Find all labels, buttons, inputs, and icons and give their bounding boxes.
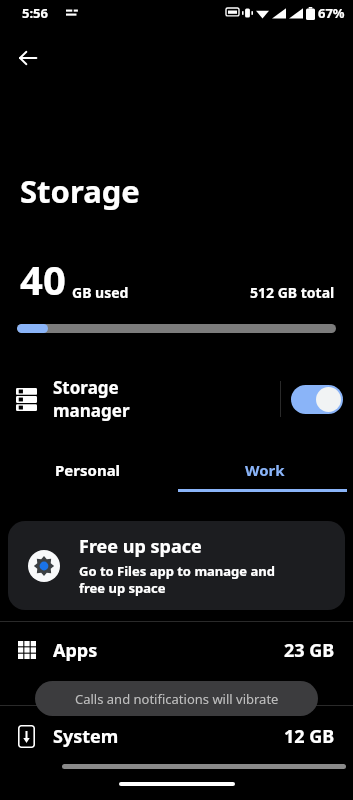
staticText: 12 GB [284, 724, 335, 749]
staticText: Go to Files app to manage and free up sp… [79, 562, 275, 597]
button[interactable]: Back [6, 36, 50, 80]
staticText: 5:56 [22, 4, 48, 22]
staticText: Apps [53, 638, 284, 663]
button[interactable]: Storage manager toggle [281, 366, 353, 432]
staticText: 67% [318, 4, 345, 22]
button[interactable]: Apps [0, 624, 353, 676]
staticText: GB used [72, 283, 129, 302]
button[interactable]: Storage manager [0, 366, 353, 432]
staticText: Free up space [79, 534, 202, 559]
button[interactable]: Personal [0, 448, 176, 492]
staticText: System [53, 724, 284, 749]
staticText: 512 GB total [250, 283, 335, 302]
staticText: Storage [20, 170, 140, 212]
staticText: Work [245, 460, 285, 480]
staticText: Personal [55, 460, 121, 480]
button[interactable]: System [0, 710, 353, 762]
button[interactable]: Work [176, 448, 353, 492]
staticText: Calls and notifications will vibrate [75, 690, 279, 708]
button[interactable]: Free up space [8, 521, 345, 610]
staticText: Storage manager [53, 376, 130, 422]
staticText: 40 [20, 252, 66, 306]
staticText: 23 GB [284, 638, 335, 663]
